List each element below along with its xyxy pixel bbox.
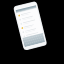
- button[interactable]: Phone mockup: [0, 0, 64, 64]
